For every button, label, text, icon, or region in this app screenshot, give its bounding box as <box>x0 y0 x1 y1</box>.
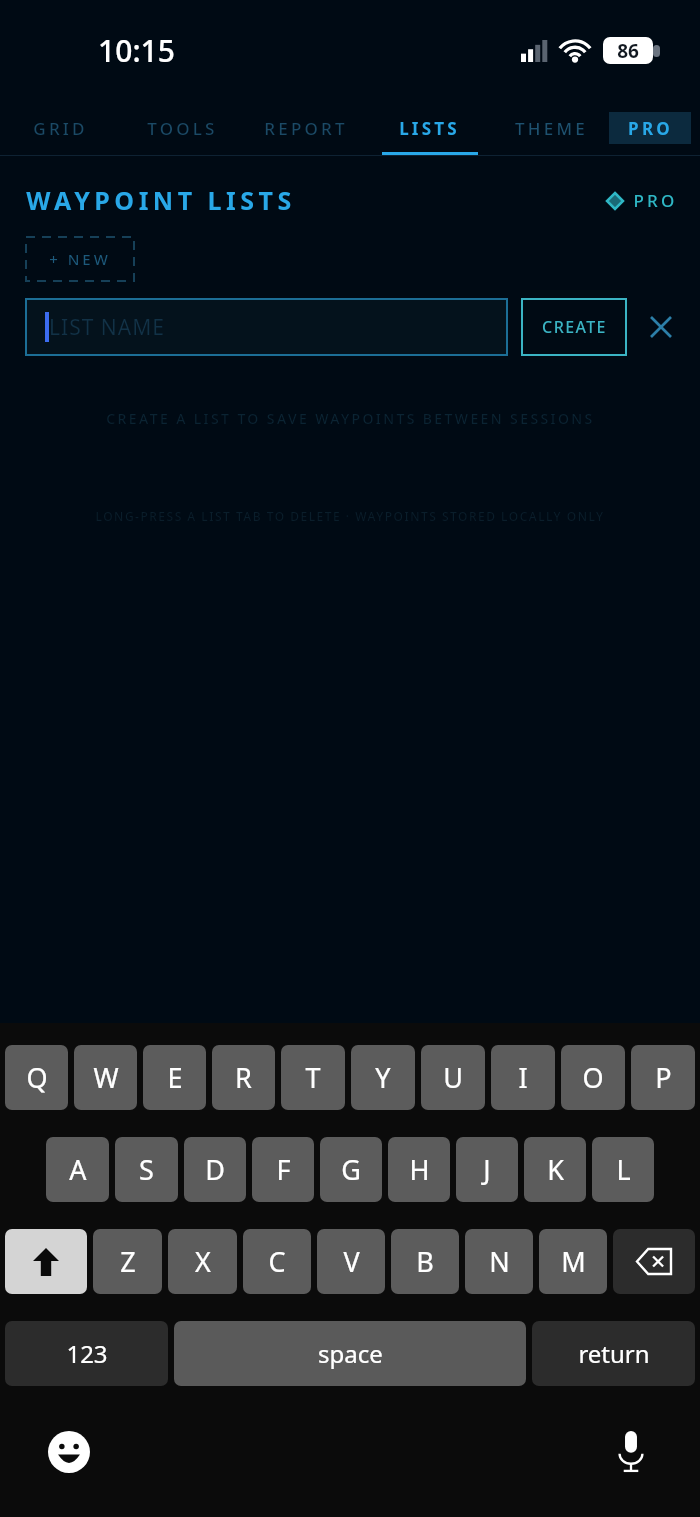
staticText: TOOLS <box>147 117 218 140</box>
staticText: LIST NAME <box>49 313 165 342</box>
staticText: K <box>547 1151 564 1188</box>
button[interactable]: D <box>184 1137 246 1202</box>
button[interactable]: LISTS <box>379 100 479 156</box>
staticText: T <box>305 1059 321 1096</box>
button[interactable]: L <box>592 1137 654 1202</box>
button[interactable]: Voice input <box>608 1429 654 1475</box>
button[interactable]: Z <box>93 1229 162 1294</box>
staticText: B <box>416 1243 434 1280</box>
button[interactable]: Y <box>351 1045 415 1110</box>
button[interactable]: Emoji <box>46 1429 92 1475</box>
staticText: Y <box>375 1059 391 1096</box>
button[interactable]: PRO <box>609 112 691 144</box>
button[interactable]: M <box>539 1229 607 1294</box>
staticText: Z <box>120 1243 136 1280</box>
button[interactable]: return <box>532 1321 695 1386</box>
staticText: A <box>69 1151 87 1188</box>
staticText: 86 <box>617 38 639 64</box>
staticText: U <box>443 1059 463 1096</box>
staticText: Q <box>26 1059 48 1096</box>
staticText: WAYPOINT LISTS <box>26 183 296 217</box>
staticText: E <box>167 1059 183 1096</box>
button[interactable]: PRO <box>606 189 678 212</box>
button[interactable]: GRID <box>15 100 105 156</box>
staticText: X <box>195 1243 211 1280</box>
staticText: LISTS <box>399 117 460 140</box>
staticText: J <box>483 1151 491 1188</box>
button[interactable]: Q <box>5 1045 68 1110</box>
button[interactable]: F <box>252 1137 314 1202</box>
button[interactable]: S <box>115 1137 178 1202</box>
button[interactable]: P <box>631 1045 695 1110</box>
button[interactable]: E <box>143 1045 206 1110</box>
staticText: H <box>409 1151 430 1188</box>
button[interactable]: T <box>281 1045 345 1110</box>
button[interactable]: O <box>561 1045 625 1110</box>
staticText: M <box>561 1243 586 1280</box>
button[interactable]: K <box>524 1137 586 1202</box>
staticText: R <box>235 1059 252 1096</box>
staticText: S <box>139 1151 154 1188</box>
staticText: 10:15 <box>98 30 175 71</box>
button[interactable]: TOOLS <box>132 100 232 156</box>
button[interactable]: G <box>320 1137 382 1202</box>
staticText: P <box>655 1059 672 1096</box>
staticText: O <box>582 1059 604 1096</box>
staticText: I <box>518 1059 528 1096</box>
staticText: C <box>268 1243 286 1280</box>
button[interactable]: N <box>465 1229 533 1294</box>
button[interactable]: C <box>243 1229 311 1294</box>
staticText: CREATE A LIST TO SAVE WAYPOINTS BETWEEN … <box>106 409 595 428</box>
staticText: N <box>489 1243 510 1280</box>
button[interactable]: Shift <box>5 1229 87 1294</box>
button[interactable]: B <box>391 1229 459 1294</box>
staticText: G <box>341 1151 361 1188</box>
staticText: PRO <box>633 189 678 212</box>
staticText: GRID <box>33 117 88 140</box>
staticText: CREATE <box>542 316 607 338</box>
staticText: W <box>93 1059 119 1096</box>
button[interactable]: Close <box>644 310 678 344</box>
staticText: + NEW <box>49 249 111 269</box>
staticText: L <box>616 1151 631 1188</box>
button[interactable]: space <box>174 1321 526 1386</box>
button[interactable]: R <box>212 1045 275 1110</box>
button[interactable]: THEME <box>496 100 606 156</box>
button[interactable]: J <box>456 1137 518 1202</box>
staticText: PRO <box>628 117 673 140</box>
button[interactable]: 123 <box>5 1321 168 1386</box>
staticText: THEME <box>515 117 588 140</box>
button[interactable]: I <box>491 1045 555 1110</box>
button[interactable]: CREATE <box>522 299 626 355</box>
button[interactable]: Backspace <box>613 1229 695 1294</box>
staticText: REPORT <box>264 117 348 140</box>
staticText: D <box>205 1151 225 1188</box>
staticText: LONG-PRESS A LIST TAB TO DELETE · WAYPOI… <box>95 508 605 524</box>
button[interactable]: A <box>46 1137 109 1202</box>
button[interactable]: LIST NAME <box>26 299 507 355</box>
staticText: space <box>318 1337 383 1370</box>
button[interactable]: REPORT <box>248 100 363 156</box>
button[interactable]: H <box>388 1137 450 1202</box>
button[interactable]: + NEW <box>26 237 134 281</box>
button[interactable]: X <box>168 1229 237 1294</box>
staticText: 123 <box>66 1337 108 1370</box>
staticText: return <box>578 1337 650 1370</box>
button[interactable]: V <box>317 1229 385 1294</box>
staticText: F <box>276 1151 291 1188</box>
staticText: V <box>343 1243 360 1280</box>
button[interactable]: U <box>421 1045 485 1110</box>
button[interactable]: W <box>74 1045 137 1110</box>
